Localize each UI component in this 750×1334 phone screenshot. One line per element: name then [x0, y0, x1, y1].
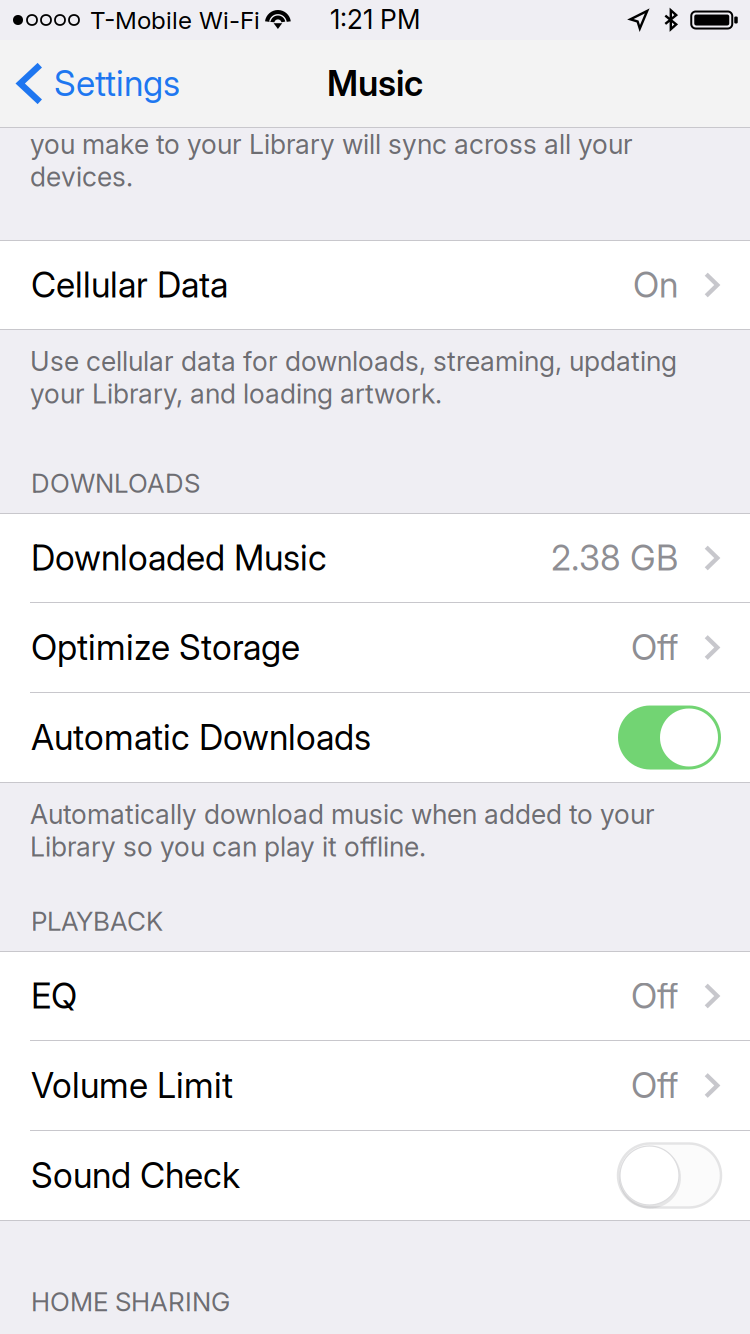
staticText: PLAYBACK — [31, 905, 163, 937]
staticText: Music — [327, 62, 423, 104]
button[interactable]: EQ — [0, 952, 750, 1040]
staticText: Off — [631, 975, 678, 1017]
staticText: HOME SHARING — [31, 1286, 230, 1317]
staticText: Optimize Storage — [31, 626, 300, 668]
staticText: Sound Check — [31, 1154, 240, 1196]
staticText: Library so you can play it offline. — [30, 830, 426, 863]
button[interactable]: Settings — [0, 40, 192, 127]
button[interactable]: Volume Limit — [0, 1041, 750, 1130]
staticText: Volume Limit — [31, 1064, 233, 1106]
staticText: Off — [631, 626, 678, 668]
staticText: Off — [631, 1064, 678, 1106]
staticText: you make to your Library will sync acros… — [30, 128, 633, 160]
staticText: 1:21 PM — [330, 3, 420, 35]
staticText: Settings — [54, 62, 180, 104]
staticText: T-Mobile Wi-Fi — [90, 5, 260, 35]
button[interactable]: Downloaded Music — [0, 514, 750, 602]
button[interactable]: Automatic Downloads — [0, 693, 750, 782]
button[interactable]: Optimize Storage — [0, 603, 750, 692]
staticText: EQ — [31, 975, 77, 1017]
staticText: On — [633, 264, 678, 306]
staticText: devices. — [30, 160, 133, 193]
staticText: Cellular Data — [31, 264, 228, 306]
staticText: Use cellular data for downloads, streami… — [30, 345, 677, 377]
staticText: Automatic Downloads — [31, 716, 371, 758]
staticText: your Library, and loading artwork. — [30, 377, 442, 410]
button[interactable]: Sound Check — [0, 1131, 750, 1220]
staticText: Downloaded Music — [31, 537, 327, 579]
button[interactable]: Cellular Data — [0, 241, 750, 329]
staticText: DOWNLOADS — [31, 467, 200, 499]
staticText: Automatically download music when added … — [30, 798, 655, 830]
staticText: 2.38 GB — [551, 537, 678, 579]
